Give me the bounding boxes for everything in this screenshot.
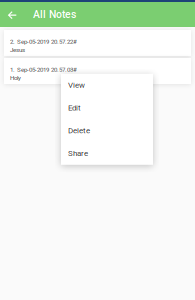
- staticText: Share: [68, 149, 88, 158]
- staticText: Holy: [10, 74, 21, 81]
- staticText: 1. Sep-05-2019 20.57.03#: [10, 66, 77, 73]
- button[interactable]: Delete: [61, 119, 153, 142]
- staticText: Edit: [68, 103, 81, 112]
- staticText: All Notes: [33, 8, 76, 21]
- staticText: Delete: [68, 126, 90, 135]
- button[interactable]: Share: [61, 142, 153, 165]
- button[interactable]: 2. Sep-05-2019 20.57.22#: [4, 30, 191, 56]
- staticText: 2. Sep-05-2019 20.57.22#: [10, 38, 77, 45]
- button[interactable]: All Notes: [25, 2, 76, 27]
- staticText: Jesus: [10, 46, 25, 53]
- button[interactable]: 1. Sep-05-2019 20.57.03#: [4, 58, 191, 84]
- button[interactable]: Back: [0, 2, 25, 27]
- button[interactable]: View: [61, 74, 153, 97]
- button[interactable]: Edit: [61, 96, 153, 119]
- staticText: View: [68, 81, 85, 90]
